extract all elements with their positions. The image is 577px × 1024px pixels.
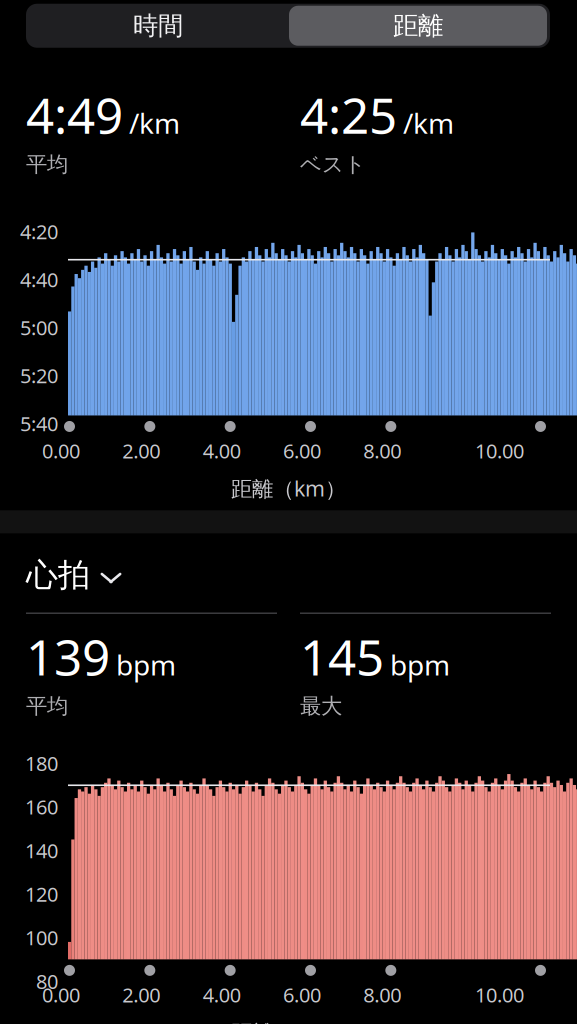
staticText: bpm <box>390 646 450 683</box>
staticText: 160 <box>25 793 58 820</box>
staticText: 4.00 <box>203 981 241 1008</box>
staticText: 180 <box>25 750 58 776</box>
staticText: 139 <box>26 624 110 689</box>
staticText: 5:40 <box>20 410 58 437</box>
staticText: /km <box>129 104 180 141</box>
staticText: 0.00 <box>42 437 80 464</box>
staticText: 140 <box>25 837 58 864</box>
staticText: 8.00 <box>363 437 401 464</box>
staticText: 6.00 <box>283 981 321 1008</box>
staticText: 距離（km） <box>231 1018 346 1024</box>
staticText: 4:49 <box>26 82 123 147</box>
staticText: 2.00 <box>122 981 160 1008</box>
button[interactable]: 距離 <box>289 6 547 46</box>
staticText: 10.00 <box>475 437 524 464</box>
staticText: 時間 <box>133 10 183 41</box>
staticText: 距離（km） <box>231 474 346 502</box>
staticText: 120 <box>25 881 58 907</box>
staticText: /km <box>403 104 454 141</box>
staticText: 100 <box>25 924 58 951</box>
staticText: 4.00 <box>203 437 241 464</box>
staticText: 4:40 <box>20 266 58 293</box>
staticText: 平均 <box>26 151 68 177</box>
staticText: 0.00 <box>42 981 80 1008</box>
staticText: 5:20 <box>20 362 58 389</box>
staticText: 2.00 <box>122 437 160 464</box>
staticText: bpm <box>116 646 176 683</box>
staticText: 4:20 <box>20 218 58 245</box>
staticText: 距離 <box>393 10 443 41</box>
staticText: 心拍 <box>26 555 90 595</box>
staticText: 10.00 <box>475 981 524 1008</box>
staticText: 平均 <box>26 693 68 719</box>
staticText: 80 <box>36 968 58 994</box>
button[interactable]: 時間 <box>27 5 289 47</box>
staticText: 5:00 <box>20 314 58 341</box>
staticText: 8.00 <box>363 981 401 1008</box>
staticText: 4:25 <box>300 82 397 147</box>
staticText: ベスト <box>300 151 366 177</box>
staticText: 最大 <box>300 693 342 719</box>
staticText: 145 <box>300 624 384 689</box>
button[interactable]: 心拍 <box>0 533 122 599</box>
staticText: 6.00 <box>283 437 321 464</box>
